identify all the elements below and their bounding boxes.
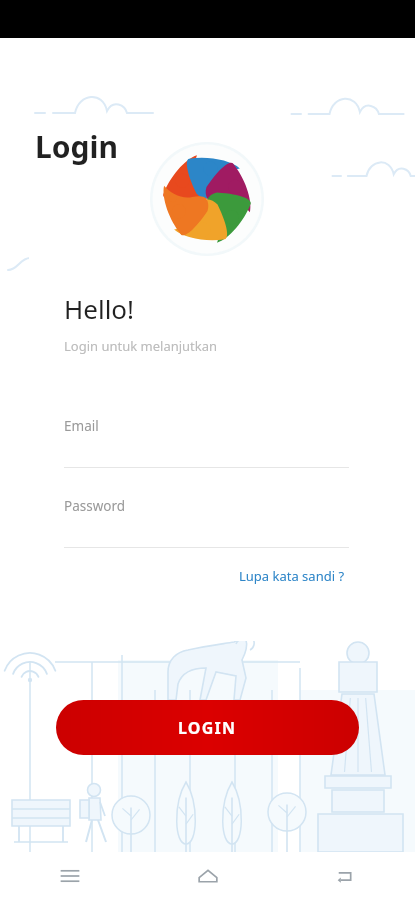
button[interactable]: Recent apps <box>0 852 139 900</box>
button[interactable]: LOGIN <box>56 700 359 755</box>
staticText: Password <box>64 497 126 515</box>
button[interactable]: Back <box>277 852 415 900</box>
staticText: Login <box>35 126 118 167</box>
button[interactable]: Password <box>64 497 349 548</box>
button[interactable]: Email <box>64 417 349 468</box>
staticText: Hello! <box>64 291 135 326</box>
staticText: Login untuk melanjutkan <box>64 337 218 355</box>
staticText: LOGIN <box>178 717 237 739</box>
staticText: Lupa kata sandi ? <box>239 567 345 585</box>
button[interactable]: Home <box>139 852 277 900</box>
button[interactable]: Lupa kata sandi ? <box>235 564 349 588</box>
staticText: Email <box>64 417 99 435</box>
